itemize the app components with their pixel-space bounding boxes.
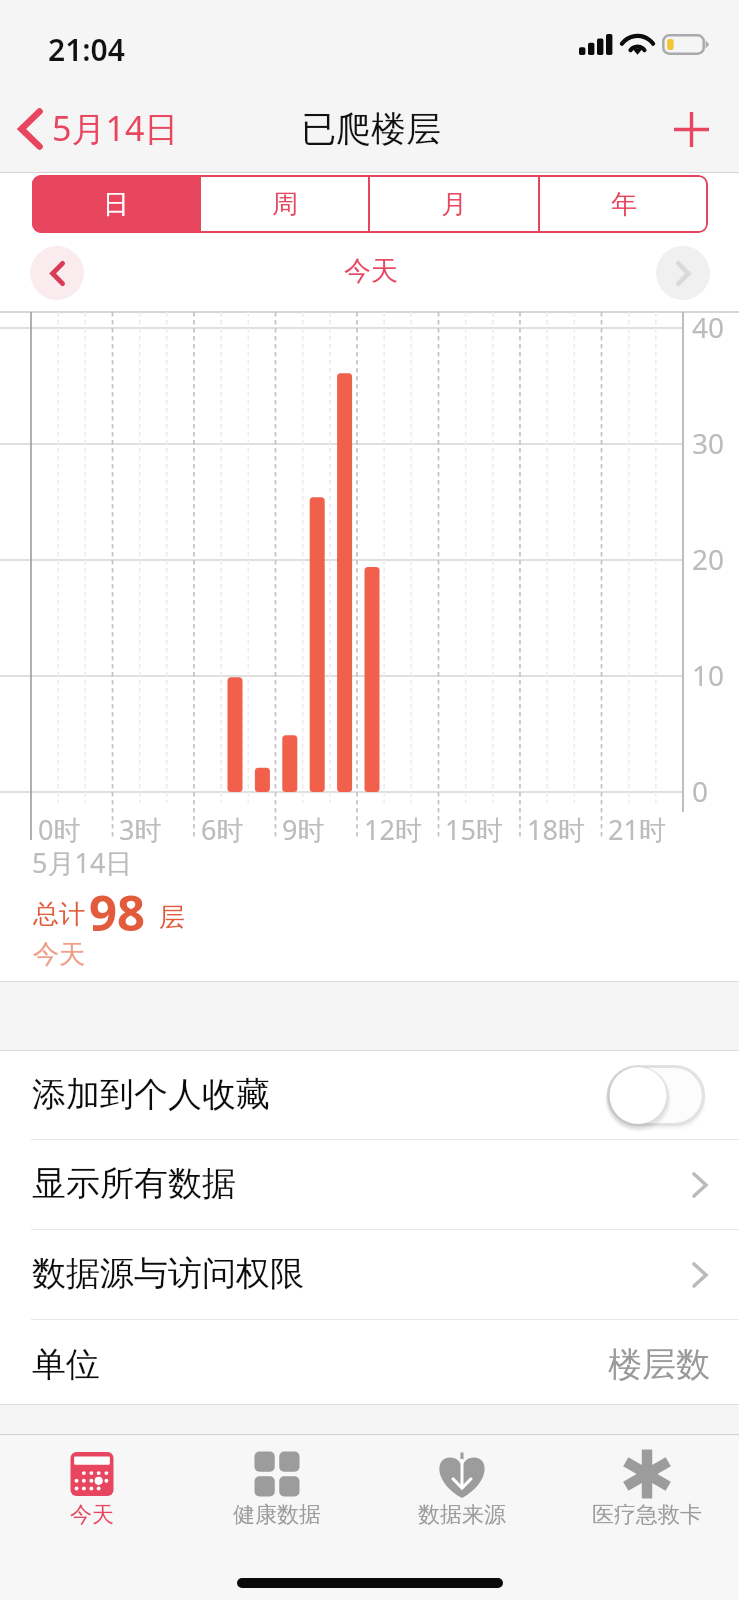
button[interactable]: 数据来源 bbox=[369, 1450, 554, 1560]
staticText: 15时 bbox=[445, 811, 503, 848]
staticText: 数据源与访问权限 bbox=[32, 1252, 304, 1295]
staticText: 添加到个人收藏 bbox=[32, 1073, 270, 1116]
button[interactable]: 显示所有数据 bbox=[0, 1140, 739, 1229]
button[interactable]: 5月14日 bbox=[6, 100, 189, 158]
button[interactable]: Next day bbox=[656, 246, 710, 300]
staticText: 今天 bbox=[344, 254, 398, 288]
staticText: 日 bbox=[103, 188, 129, 221]
staticText: 0 bbox=[692, 772, 709, 810]
staticText: 5月14日 bbox=[32, 844, 133, 881]
staticText: 医疗急救卡 bbox=[592, 1501, 702, 1529]
staticText: 月 bbox=[441, 188, 467, 221]
staticText: 年 bbox=[611, 188, 637, 221]
staticText: 数据来源 bbox=[418, 1501, 506, 1529]
staticText: 今天 bbox=[70, 1501, 114, 1529]
staticText: 0时 bbox=[38, 811, 81, 848]
staticText: 已爬楼层 bbox=[301, 107, 441, 151]
button[interactable]: 年 bbox=[540, 175, 708, 233]
staticText: 显示所有数据 bbox=[32, 1162, 236, 1205]
button[interactable]: 健康数据 bbox=[184, 1450, 369, 1560]
button[interactable]: 今天 bbox=[0, 1450, 184, 1560]
button[interactable]: 数据源与访问权限 bbox=[0, 1230, 739, 1319]
staticText: 6时 bbox=[201, 811, 244, 848]
staticText: 9时 bbox=[282, 811, 325, 848]
staticText: 40 bbox=[692, 308, 725, 346]
staticText: 98 bbox=[89, 879, 146, 946]
staticText: 12时 bbox=[364, 811, 422, 848]
staticText: 总计 bbox=[33, 898, 85, 931]
staticText: 层 bbox=[159, 901, 185, 934]
button[interactable]: 周 bbox=[201, 175, 368, 233]
button[interactable]: 日 bbox=[32, 175, 199, 233]
staticText: 3时 bbox=[119, 811, 162, 848]
staticText: 单位 bbox=[32, 1343, 100, 1386]
button[interactable]: 医疗急救卡 bbox=[554, 1450, 739, 1560]
staticText: 10 bbox=[692, 656, 725, 694]
button[interactable]: Add bbox=[656, 94, 726, 164]
staticText: 5月14日 bbox=[52, 105, 179, 151]
staticText: 20 bbox=[692, 540, 725, 578]
staticText: 21:04 bbox=[48, 29, 125, 70]
staticText: 今天 bbox=[33, 938, 85, 971]
button[interactable]: 单位 bbox=[0, 1320, 739, 1410]
staticText: 21时 bbox=[608, 811, 666, 848]
button[interactable]: 月 bbox=[370, 175, 538, 233]
staticText: 健康数据 bbox=[233, 1501, 321, 1529]
staticText: 18时 bbox=[527, 811, 585, 848]
button[interactable]: Previous day bbox=[30, 246, 84, 300]
staticText: 周 bbox=[272, 188, 298, 221]
button[interactable]: 添加到个人收藏 bbox=[0, 1051, 739, 1139]
staticText: 楼层数 bbox=[608, 1343, 710, 1386]
staticText: 30 bbox=[692, 424, 725, 462]
